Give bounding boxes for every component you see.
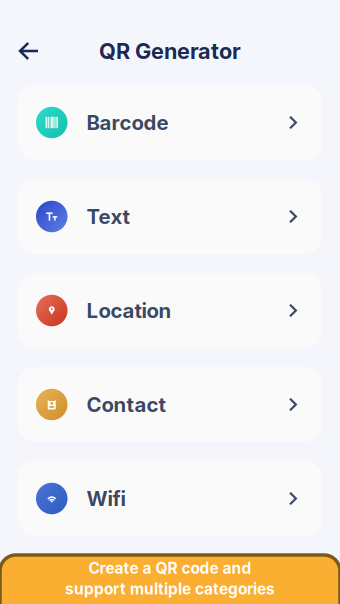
button[interactable]: Back	[7, 29, 51, 73]
staticText: QR Generator	[99, 38, 241, 64]
staticText: Create a QR code and	[88, 559, 251, 577]
staticText: Wifi	[86, 486, 125, 511]
button[interactable]: Barcode	[18, 85, 322, 160]
button[interactable]: Contact	[18, 367, 322, 442]
staticText: Text	[86, 204, 129, 229]
staticText: Location	[86, 298, 171, 323]
staticText: support multiple categories	[65, 579, 275, 598]
button[interactable]: Location	[18, 273, 322, 348]
button[interactable]: Wifi	[18, 461, 322, 536]
staticText: Barcode	[86, 110, 168, 135]
button[interactable]: Create a QR code and	[0, 529, 340, 604]
button[interactable]: Text	[18, 179, 322, 254]
staticText: Contact	[86, 392, 165, 417]
